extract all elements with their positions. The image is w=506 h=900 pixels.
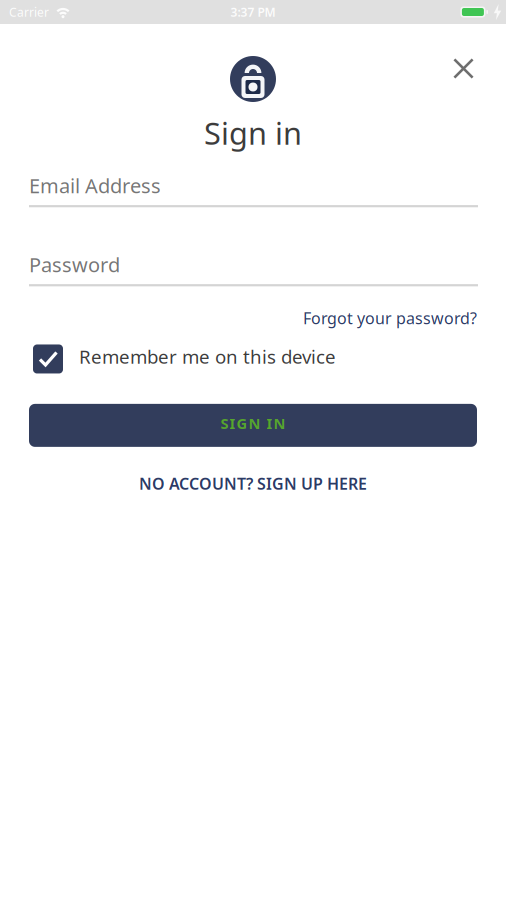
staticText: Carrier	[9, 4, 49, 20]
button[interactable]: Forgot your password?	[303, 307, 477, 328]
staticText: Forgot your password?	[303, 307, 477, 328]
staticText: Remember me on this device	[79, 344, 336, 369]
button[interactable]: Remember me on this device	[33, 344, 63, 373]
button[interactable]: S I G N I N	[29, 404, 477, 447]
staticText: Password	[29, 251, 120, 278]
button[interactable]: NO ACCOUNT? SIGN UP HERE	[139, 473, 367, 494]
staticText: S I G N I N	[220, 414, 285, 433]
button[interactable]: Close	[444, 49, 483, 88]
staticText: Email Address	[29, 172, 161, 199]
staticText: NO ACCOUNT? SIGN UP HERE	[139, 473, 367, 494]
staticText: Sign in	[204, 112, 302, 153]
staticText: 3:37 PM	[230, 4, 275, 20]
